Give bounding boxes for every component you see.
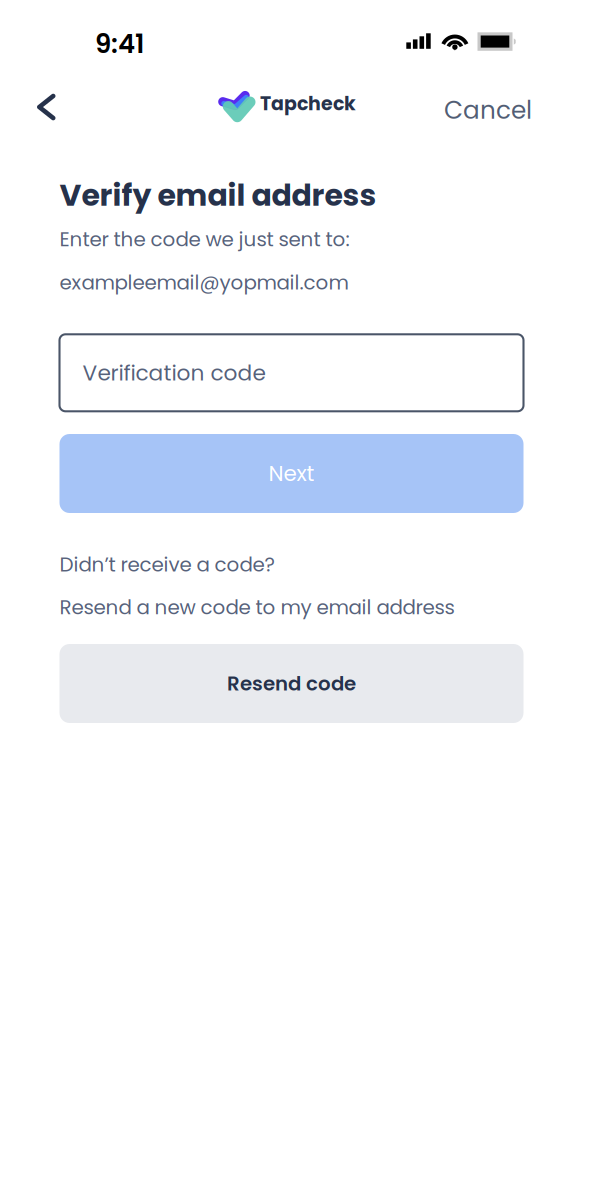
staticText: exampleemail@yopmail.com	[59, 269, 348, 296]
staticText: Verify email address	[59, 174, 376, 216]
button[interactable]: Back	[0, 68, 73, 128]
staticText: 9:41	[95, 26, 144, 62]
button[interactable]: Resend code	[59, 644, 523, 723]
staticText: Cancel	[444, 93, 532, 127]
staticText: Next	[268, 458, 314, 489]
staticText: Didn’t receive a code?	[59, 551, 274, 578]
button[interactable]: Cancel	[430, 68, 546, 138]
staticText: Verification code	[82, 358, 265, 388]
staticText: Enter the code we just sent to:	[59, 225, 349, 253]
staticText: Tapcheck	[260, 90, 356, 117]
staticText: Resend a new code to my email address	[59, 593, 454, 621]
staticText: Resend code	[227, 670, 356, 697]
button[interactable]: Next	[59, 434, 523, 513]
